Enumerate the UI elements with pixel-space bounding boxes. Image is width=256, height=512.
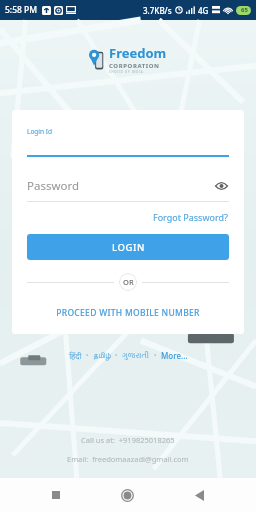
staticText: C H O I C E O F I N D I A [109,70,143,74]
staticText: • [115,351,118,361]
staticText: Login Id [27,127,52,136]
button[interactable]: Recent apps [41,480,71,510]
staticText: Freedom [109,44,167,62]
staticText: ગુજરાતી [122,352,150,360]
staticText: CORPORATION [109,62,160,70]
staticText: Call us at: +919825018265 [81,435,175,445]
staticText: தமிழ் [93,352,111,360]
staticText: 65 [241,6,248,14]
staticText: Email: freedomaazadi@gmail.com [67,454,189,464]
button[interactable]: LOGIN [27,234,229,260]
button[interactable]: PROCEED WITH MOBILE NUMBER [27,304,229,322]
staticText: Password [27,178,213,194]
button[interactable]: More... [160,348,189,363]
staticText: Forgot Password? [153,211,228,223]
staticText: PROCEED WITH MOBILE NUMBER [56,307,200,319]
staticText: • [154,351,157,361]
staticText: More... [161,350,188,361]
button[interactable]: ગુજરાતી [121,350,151,362]
staticText: OR [123,277,134,287]
staticText: हिंदी [69,350,82,361]
button[interactable]: Home [112,480,142,510]
button[interactable]: தமிழ் [92,350,112,362]
staticText: 5:58 PM [5,4,38,16]
button[interactable]: Back [184,480,214,510]
staticText: 4G [198,5,209,16]
staticText: 3.7KB/s [143,5,172,16]
button[interactable]: हिंदी [68,348,83,363]
button[interactable]: Forgot Password? [152,209,229,225]
staticText: LOGIN [112,241,145,254]
button[interactable]: Show password [213,178,229,194]
staticText: • [86,351,89,361]
